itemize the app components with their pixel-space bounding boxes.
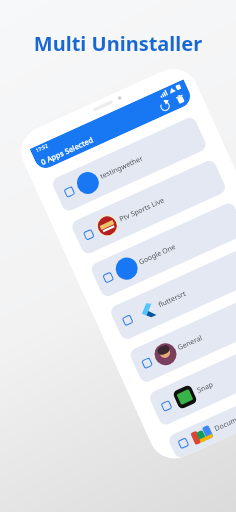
button[interactable]: Document	[167, 372, 236, 460]
staticText: Snap	[196, 380, 215, 396]
button[interactable]: Snap	[147, 329, 236, 427]
button[interactable]: testingwether	[50, 115, 208, 213]
button[interactable]: General	[128, 287, 236, 384]
button[interactable]: Ptv Sports Live	[70, 158, 228, 256]
staticText: 0 Apps Selected	[39, 134, 95, 167]
staticText: Ptv Sports Live	[118, 195, 167, 224]
button[interactable]: fluttersrt	[109, 244, 236, 341]
staticText: General	[176, 333, 204, 353]
button[interactable]: Delete	[171, 90, 190, 108]
staticText: Multi Uninstaller	[0, 30, 236, 57]
staticText: fluttersrt	[157, 289, 188, 310]
staticText: testingwether	[98, 154, 144, 182]
staticText: Google One	[137, 242, 178, 267]
button[interactable]: Refresh	[156, 97, 174, 115]
staticText: 17:52	[35, 142, 49, 154]
button[interactable]: Google One	[89, 201, 236, 299]
staticText: Document	[213, 410, 236, 434]
